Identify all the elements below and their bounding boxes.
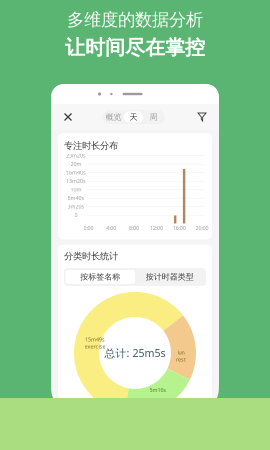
button[interactable]: 按标签名称 (65, 270, 135, 284)
staticText: 总计: 25m5s (104, 346, 165, 360)
staticText: 23m20s (66, 152, 86, 159)
staticText: 5m16s (149, 386, 166, 393)
staticText: rest (176, 356, 186, 363)
staticText: 8:00 (129, 224, 139, 231)
staticText: 4:00 (106, 224, 116, 231)
staticText: 6m40s (67, 194, 84, 201)
button[interactable]: 天 (123, 111, 143, 122)
button[interactable]: Close (56, 105, 80, 129)
staticText: 让时间尽在掌控 (65, 35, 205, 60)
button[interactable]: 按计时器类型 (135, 270, 204, 284)
staticText: 多维度的数据分析 (67, 9, 203, 30)
button[interactable]: Filter (190, 105, 214, 129)
staticText: 0 (74, 211, 77, 218)
staticText: 概览 (105, 112, 121, 122)
staticText: lun (177, 349, 184, 356)
staticText: 20m (70, 160, 81, 167)
staticText: 专注时长分布 (64, 140, 118, 151)
staticText: 16m40s (66, 169, 86, 176)
staticText: 按标签名称 (80, 272, 120, 282)
button[interactable]: 周 (143, 111, 163, 122)
staticText: 3m20s (67, 203, 84, 210)
staticText: 周 (149, 112, 157, 122)
staticText: 12:00 (150, 224, 163, 231)
staticText: 13m20s (66, 177, 86, 184)
button[interactable]: 概览 (103, 111, 123, 122)
staticText: 0:00 (83, 224, 93, 231)
staticText: 20:00 (195, 224, 208, 231)
staticText: 15m49s (85, 336, 105, 343)
staticText: 分类时长统计 (64, 250, 118, 262)
staticText: 天 (129, 112, 137, 122)
staticText: exercise (84, 343, 105, 350)
staticText: 按计时器类型 (146, 272, 194, 282)
staticText: 10m (70, 186, 81, 193)
staticText: 16:00 (173, 224, 186, 231)
